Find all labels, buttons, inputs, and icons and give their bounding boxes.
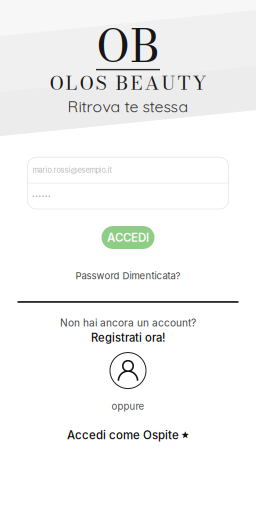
staticText: oppure xyxy=(111,401,144,412)
button[interactable]: ACCEDI xyxy=(101,226,154,249)
staticText: Password Dimenticata? xyxy=(75,270,180,282)
staticText: ACCEDI xyxy=(107,231,149,244)
staticText: Non hai ancora un account? xyxy=(60,317,196,329)
staticText: Ritrova te stessa xyxy=(67,96,188,116)
button[interactable]: Registrati ora! xyxy=(91,331,165,345)
staticText: OB xyxy=(96,12,160,80)
staticText: O L O S B E A U T Y xyxy=(49,68,206,97)
staticText: Registrati ora! xyxy=(91,331,165,345)
staticText: mario.rossi@esempio.it xyxy=(32,165,111,174)
button[interactable]: Accedi come Ospite xyxy=(67,428,189,442)
button[interactable]: Password Dimenticata? xyxy=(75,270,180,282)
staticText: Accedi come Ospite xyxy=(67,428,179,442)
button[interactable]: Profilo ospite xyxy=(110,353,146,389)
